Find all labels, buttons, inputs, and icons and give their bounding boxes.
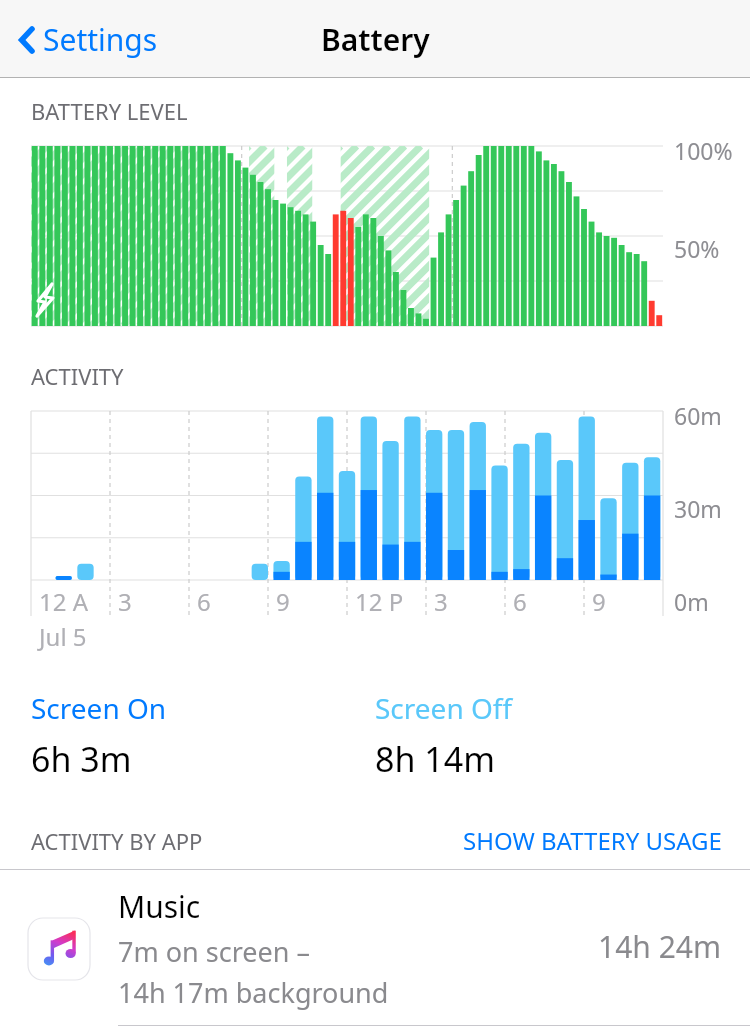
staticText: 12 P (355, 585, 404, 618)
staticText: Settings (43, 19, 158, 60)
button[interactable]: Settings (14, 13, 162, 66)
staticText: 0m (674, 586, 709, 617)
staticText: ACTIVITY BY APP (31, 826, 203, 856)
staticText: 14h 24m (598, 926, 722, 967)
staticText: 6h 3m (31, 736, 132, 782)
staticText: ACTIVITY (31, 361, 124, 391)
staticText: 8h 14m (375, 736, 495, 782)
staticText: SHOW BATTERY USAGE (463, 824, 722, 857)
staticText: 30m (674, 493, 722, 524)
staticText: 9 (592, 585, 606, 618)
staticText: 50% (674, 233, 720, 264)
staticText: 12 A (39, 585, 89, 618)
button[interactable]: Music (0, 870, 750, 1026)
staticText: 3 (434, 585, 448, 618)
staticText: 3 (118, 585, 132, 618)
staticText: 14h 17m background (118, 974, 389, 1011)
staticText: Jul 5 (39, 620, 87, 653)
staticText: 6 (197, 585, 211, 618)
staticText: 9 (276, 585, 290, 618)
staticText: Battery (321, 19, 430, 60)
staticText: 60m (674, 400, 722, 431)
button[interactable]: SHOW BATTERY USAGE (463, 824, 722, 857)
staticText: BATTERY LEVEL (31, 96, 188, 126)
staticText: 6 (513, 585, 527, 618)
staticText: Screen Off (375, 689, 513, 727)
staticText: Music (118, 886, 201, 927)
staticText: Screen On (31, 689, 167, 727)
staticText: 100% (674, 135, 733, 166)
staticText: 7m on screen – (118, 933, 310, 970)
